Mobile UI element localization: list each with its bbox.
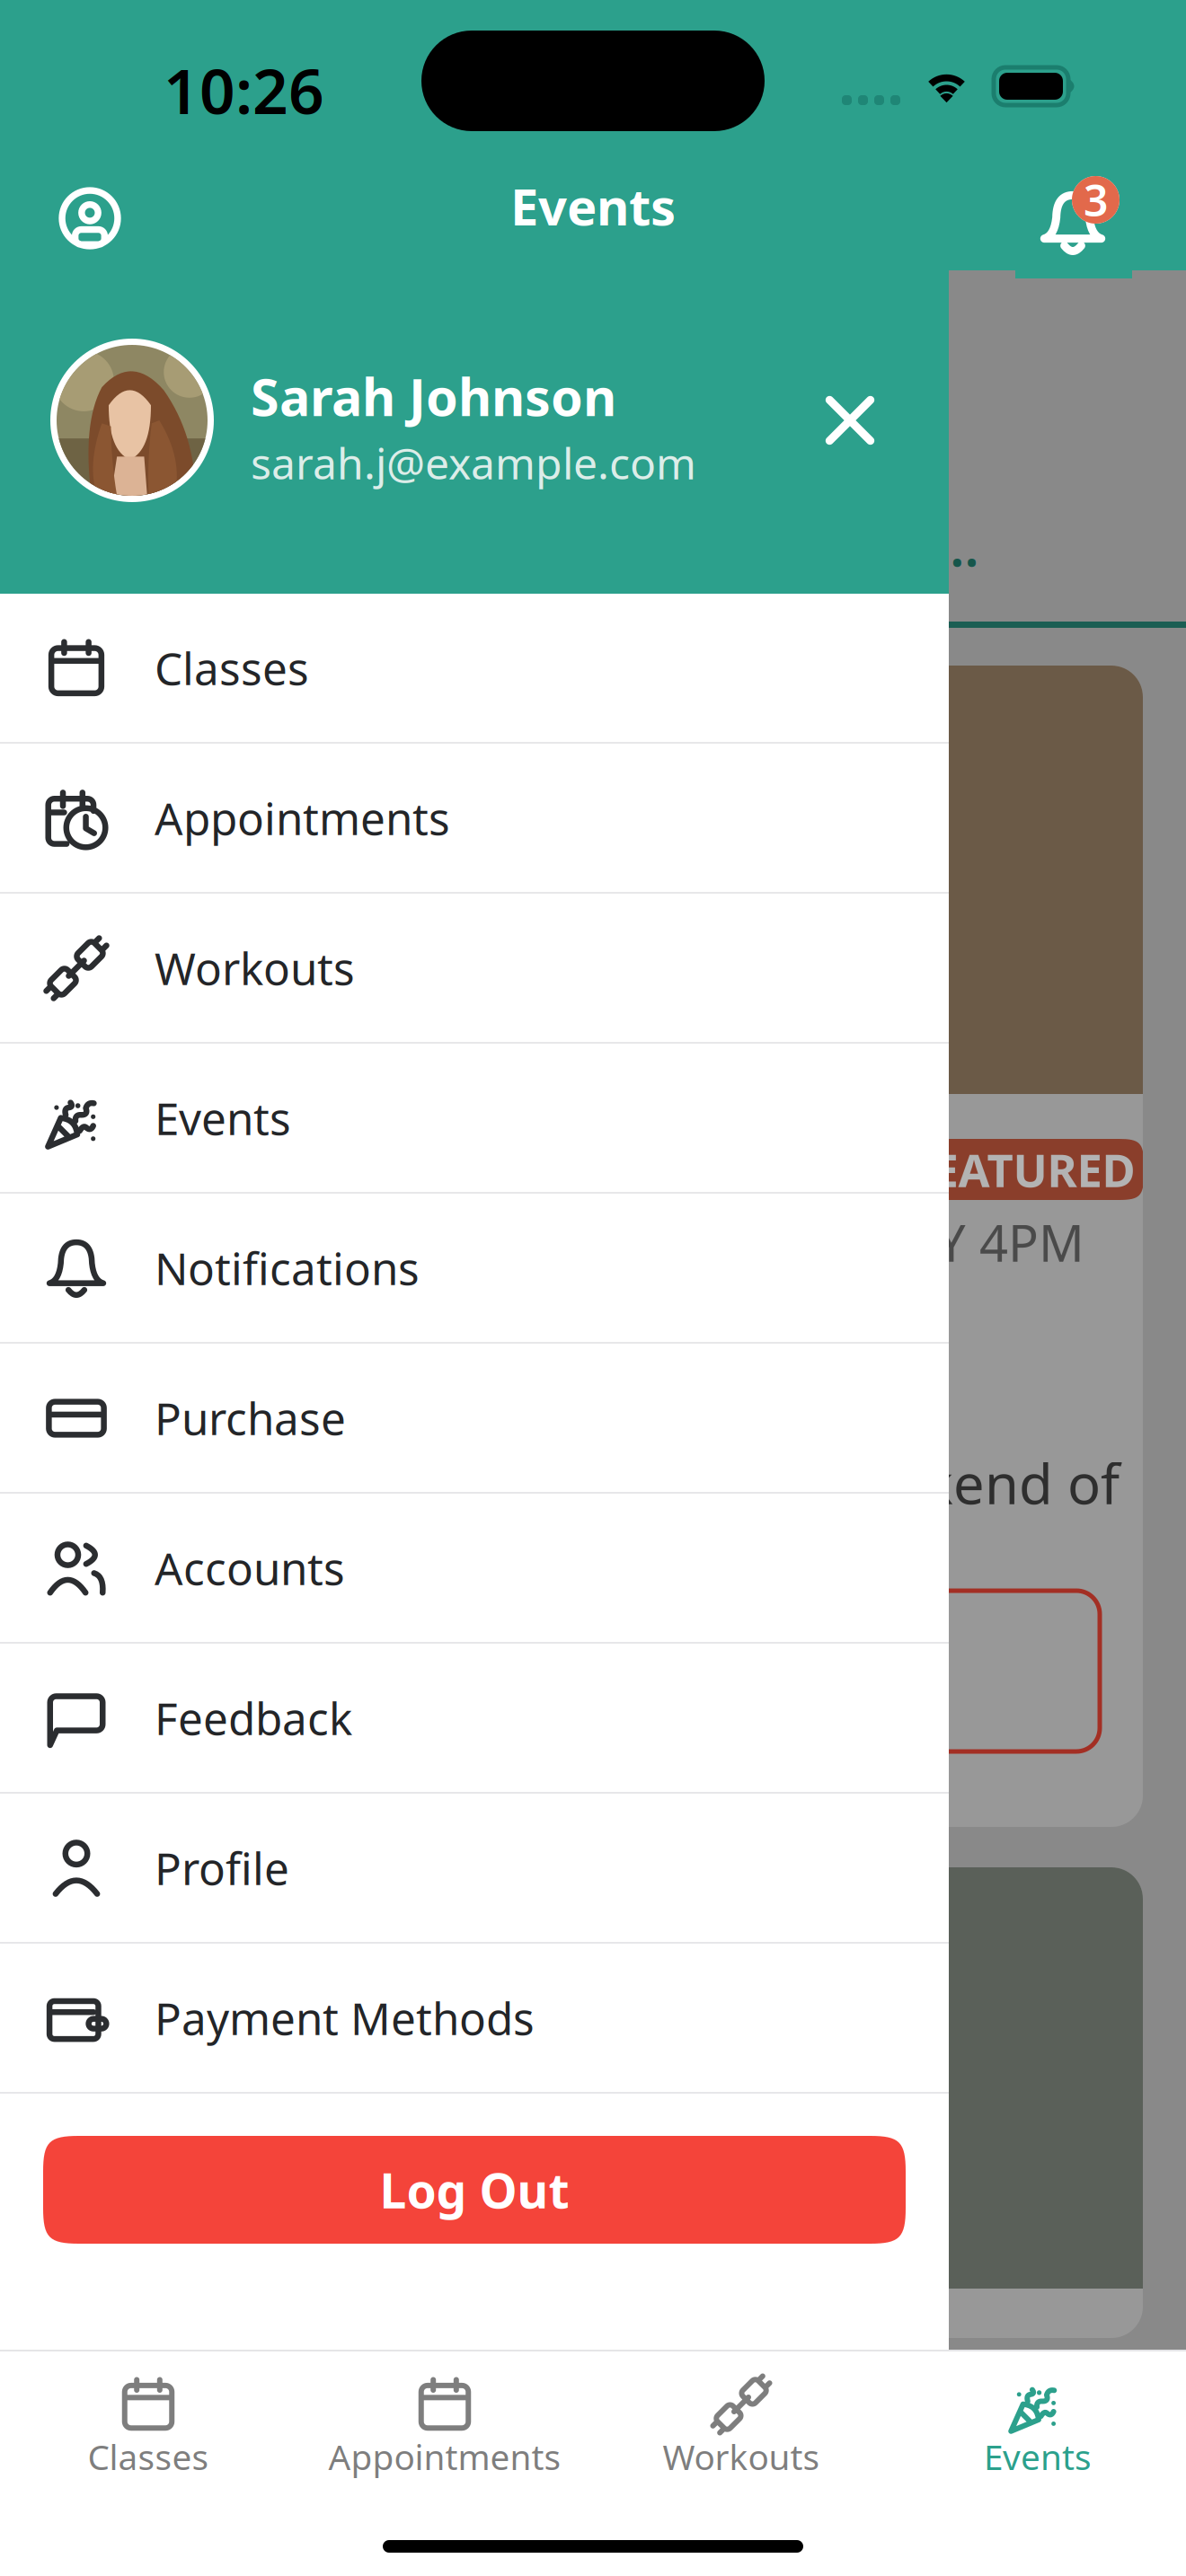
staticText: Classes xyxy=(155,638,309,697)
staticText: Log Out xyxy=(380,2158,569,2222)
button[interactable]: Appointments xyxy=(0,744,949,894)
staticText: Classes xyxy=(88,2433,209,2480)
button[interactable]: Log Out xyxy=(43,2136,906,2244)
staticText: Profile xyxy=(155,1838,289,1897)
staticText: Appointments xyxy=(328,2433,561,2480)
button[interactable]: Profile xyxy=(38,166,142,270)
button[interactable]: Events xyxy=(889,2374,1186,2500)
button[interactable]: Notifications xyxy=(0,1194,949,1344)
staticText: Join us for a full weekend of xyxy=(402,1446,1120,1519)
staticText: Upcoming Events xyxy=(629,511,1006,581)
button[interactable]: Events xyxy=(0,1044,949,1194)
button[interactable]: Notifications xyxy=(1015,162,1132,278)
staticText: Notifications xyxy=(155,1238,420,1297)
button[interactable]: Accounts xyxy=(0,1494,949,1644)
button[interactable]: Classes xyxy=(0,2374,296,2500)
staticText: Events xyxy=(984,2433,1092,2480)
staticText: Events xyxy=(510,172,676,239)
staticText: Payment Methods xyxy=(155,1988,535,2047)
button[interactable]: Appointments xyxy=(296,2374,593,2500)
staticText: Feedback xyxy=(155,1688,352,1747)
button[interactable]: Classes xyxy=(0,594,949,744)
button[interactable]: Workouts xyxy=(593,2374,889,2500)
staticText: Appointments xyxy=(155,788,450,847)
staticText: Workouts xyxy=(155,938,355,997)
button[interactable]: Workouts xyxy=(0,894,949,1044)
staticText: Sarah Johnson xyxy=(251,362,616,430)
staticText: Purchase xyxy=(155,1388,346,1447)
staticText: 3 xyxy=(1084,171,1108,228)
button[interactable]: Close menu xyxy=(798,368,902,472)
staticText: sarah.j@example.com xyxy=(251,434,696,491)
button[interactable]: Feedback xyxy=(0,1644,949,1794)
staticText: Accounts xyxy=(155,1538,345,1597)
button[interactable]: Profile xyxy=(0,1794,949,1944)
staticText: TODAY 4PM xyxy=(806,1209,1084,1276)
button[interactable]: Purchase xyxy=(0,1344,949,1494)
staticText: FEATURED xyxy=(908,1139,1135,1200)
staticText: Workouts xyxy=(663,2433,820,2480)
button[interactable]: Payment Methods xyxy=(0,1944,949,2094)
staticText: Events xyxy=(155,1088,291,1147)
staticText: 10:26 xyxy=(164,49,324,131)
